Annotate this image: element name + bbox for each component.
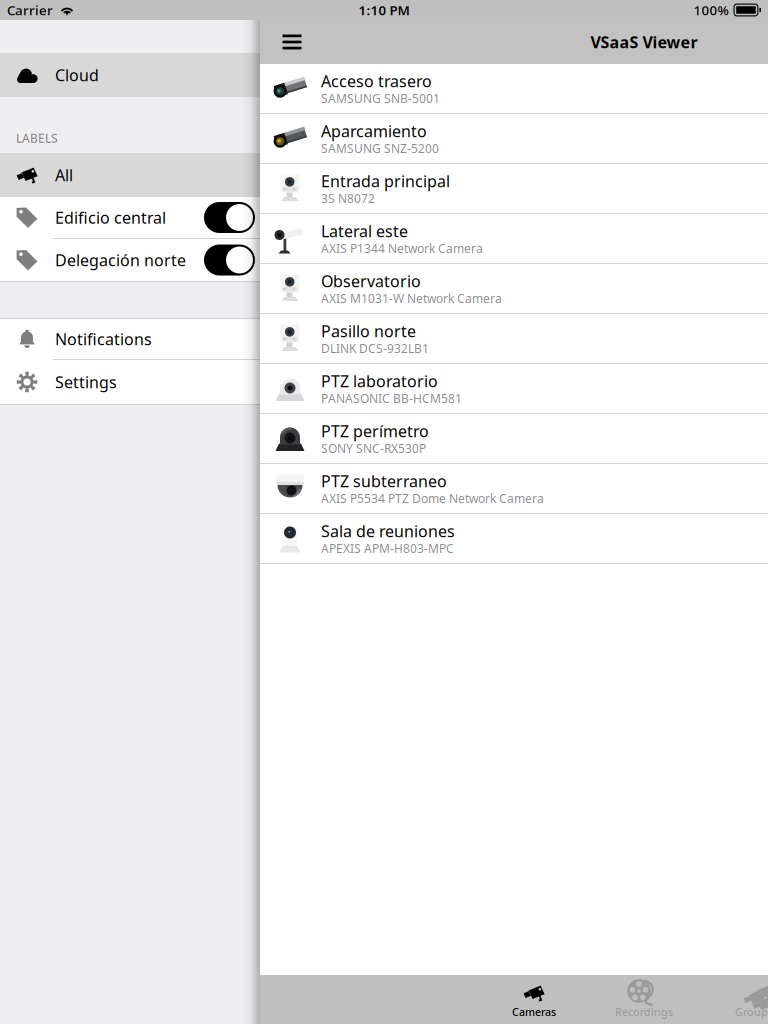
staticText: AXIS P5534 PTZ Dome Network Camera <box>321 490 544 506</box>
staticText: All <box>55 164 73 186</box>
staticText: Carrier <box>7 1 53 19</box>
button[interactable]: Entrada principal <box>260 164 768 214</box>
staticText: SONY SNC-RX530P <box>321 440 426 456</box>
button[interactable]: Menu <box>270 20 314 64</box>
staticText: 3S N8072 <box>321 190 375 206</box>
staticText: Observatorio <box>321 270 421 292</box>
staticText: Lateral este <box>321 220 408 242</box>
button[interactable]: Cloud <box>0 53 260 97</box>
staticText: PTZ subterraneo <box>321 470 447 492</box>
button[interactable]: Pasillo norte <box>260 314 768 364</box>
button[interactable]: Settings <box>0 360 260 404</box>
staticText: DLINK DCS-932LB1 <box>321 340 429 356</box>
staticText: Recordings <box>615 1005 673 1019</box>
staticText: SAMSUNG SNB-5001 <box>321 90 440 106</box>
button[interactable]: All <box>0 153 260 197</box>
button[interactable]: Delegación norte <box>0 239 260 281</box>
staticText: Sala de reuniones <box>321 520 455 542</box>
staticText: PTZ perímetro <box>321 420 429 442</box>
button[interactable]: Sala de reuniones <box>260 514 768 564</box>
button[interactable]: Lateral este <box>260 214 768 264</box>
staticText: Edificio central <box>55 207 166 228</box>
staticText: APEXIS APM-H803-MPC <box>321 540 454 556</box>
staticText: Settings <box>55 371 117 393</box>
button[interactable]: PTZ subterraneo <box>260 464 768 514</box>
button[interactable]: Recordings <box>589 975 699 1024</box>
staticText: PANASONIC BB-HCM581 <box>321 390 462 406</box>
button[interactable]: Observatorio <box>260 264 768 314</box>
staticText: 100% <box>693 1 728 19</box>
staticText: SAMSUNG SNZ-5200 <box>321 140 439 156</box>
staticText: Delegación norte <box>55 249 186 271</box>
staticText: 1:10 PM <box>358 1 409 19</box>
staticText: Groups <box>735 1005 768 1019</box>
staticText: Notifications <box>55 328 152 350</box>
staticText: AXIS P1344 Network Camera <box>321 240 483 256</box>
staticText: Acceso trasero <box>321 70 432 92</box>
staticText: Pasillo norte <box>321 320 416 342</box>
staticText: LABELS <box>16 130 58 146</box>
button[interactable]: Groups <box>699 975 768 1024</box>
button[interactable]: PTZ laboratorio <box>260 364 768 414</box>
staticText: Cloud <box>55 64 99 86</box>
button[interactable]: Edificio central <box>0 197 260 239</box>
staticText: PTZ laboratorio <box>321 370 438 392</box>
staticText: Aparcamiento <box>321 120 427 142</box>
staticText: VSaaS Viewer <box>590 31 697 53</box>
button[interactable]: Aparcamiento <box>260 114 768 164</box>
staticText: Cameras <box>512 1005 556 1019</box>
button[interactable]: PTZ perímetro <box>260 414 768 464</box>
button[interactable]: Acceso trasero <box>260 64 768 114</box>
staticText: Entrada principal <box>321 170 450 192</box>
button[interactable]: Notifications <box>0 319 260 360</box>
staticText: AXIS M1031-W Network Camera <box>321 290 502 306</box>
button[interactable]: Cameras <box>479 975 589 1024</box>
